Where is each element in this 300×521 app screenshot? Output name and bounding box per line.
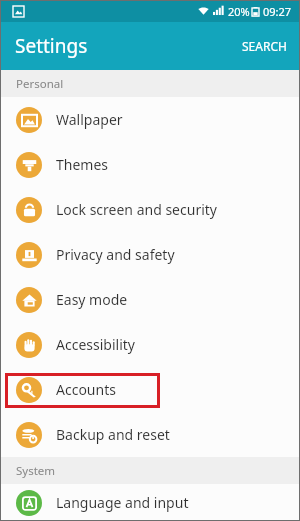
staticText: Privacy and safety [56, 245, 175, 264]
button[interactable]: Backup and reset [0, 412, 300, 457]
staticText: Themes [56, 155, 109, 174]
staticText: 09:27 [263, 4, 292, 19]
staticText: Easy mode [56, 290, 128, 309]
button[interactable]: Lock screen and security [0, 187, 300, 232]
staticText: Backup and reset [56, 425, 170, 444]
staticText: Accounts [56, 380, 116, 399]
staticText: Wallpaper [56, 110, 123, 129]
staticText: System [16, 463, 56, 479]
button[interactable]: Accounts [0, 367, 300, 412]
staticText: Lock screen and security [56, 200, 217, 219]
button[interactable]: Themes [0, 142, 300, 187]
staticText: 20% [228, 4, 250, 19]
staticText: SEARCH [242, 38, 287, 54]
staticText: Settings [15, 33, 88, 59]
staticText: Accessibility [56, 335, 135, 354]
button[interactable]: Privacy and safety [0, 232, 300, 277]
staticText: Language and input [56, 493, 189, 512]
button[interactable]: Accessibility [0, 322, 300, 367]
button[interactable]: Language and input [0, 484, 300, 521]
staticText: Personal [16, 76, 64, 92]
button[interactable]: SEARCH [229, 26, 300, 66]
button[interactable]: Wallpaper [0, 97, 300, 142]
button[interactable]: Easy mode [0, 277, 300, 322]
